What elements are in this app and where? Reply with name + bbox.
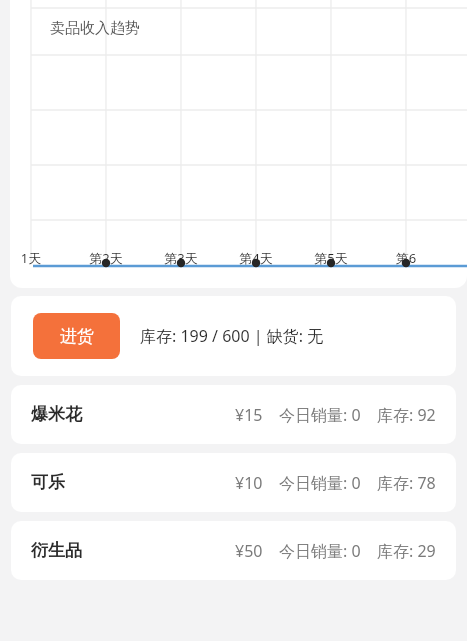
- button[interactable]: 卖品收入趋势图表: [10, 0, 467, 288]
- staticText: ¥15: [235, 404, 263, 426]
- staticText: 第6: [376, 249, 436, 267]
- staticText: ¥10: [235, 472, 263, 494]
- staticText: 进货: [60, 326, 94, 347]
- staticText: 1天: [10, 249, 61, 267]
- staticText: ¥50: [235, 540, 263, 562]
- button[interactable]: 进货: [33, 313, 120, 359]
- button[interactable]: 可乐: [11, 453, 456, 512]
- staticText: 库存: 92: [377, 404, 436, 426]
- button[interactable]: 衍生品: [11, 521, 456, 580]
- staticText: 今日销量: 0: [279, 404, 361, 426]
- button[interactable]: 爆米花: [11, 385, 456, 444]
- staticText: 可乐: [31, 472, 65, 493]
- staticText: 第4天: [226, 249, 286, 267]
- staticText: 第5天: [301, 249, 361, 267]
- staticText: 第3天: [151, 249, 211, 267]
- staticText: 卖品收入趋势: [50, 19, 140, 38]
- staticText: 衍生品: [31, 540, 82, 561]
- other: 卖品收入趋势图表: [10, 0, 467, 288]
- staticText: 今日销量: 0: [279, 472, 361, 494]
- staticText: 第2天: [76, 249, 136, 267]
- staticText: 库存: 199 / 600 | 缺货: 无: [140, 325, 324, 347]
- staticText: 爆米花: [31, 404, 82, 425]
- staticText: 今日销量: 0: [279, 540, 361, 562]
- staticText: 库存: 78: [377, 472, 436, 494]
- staticText: 库存: 29: [377, 540, 436, 562]
